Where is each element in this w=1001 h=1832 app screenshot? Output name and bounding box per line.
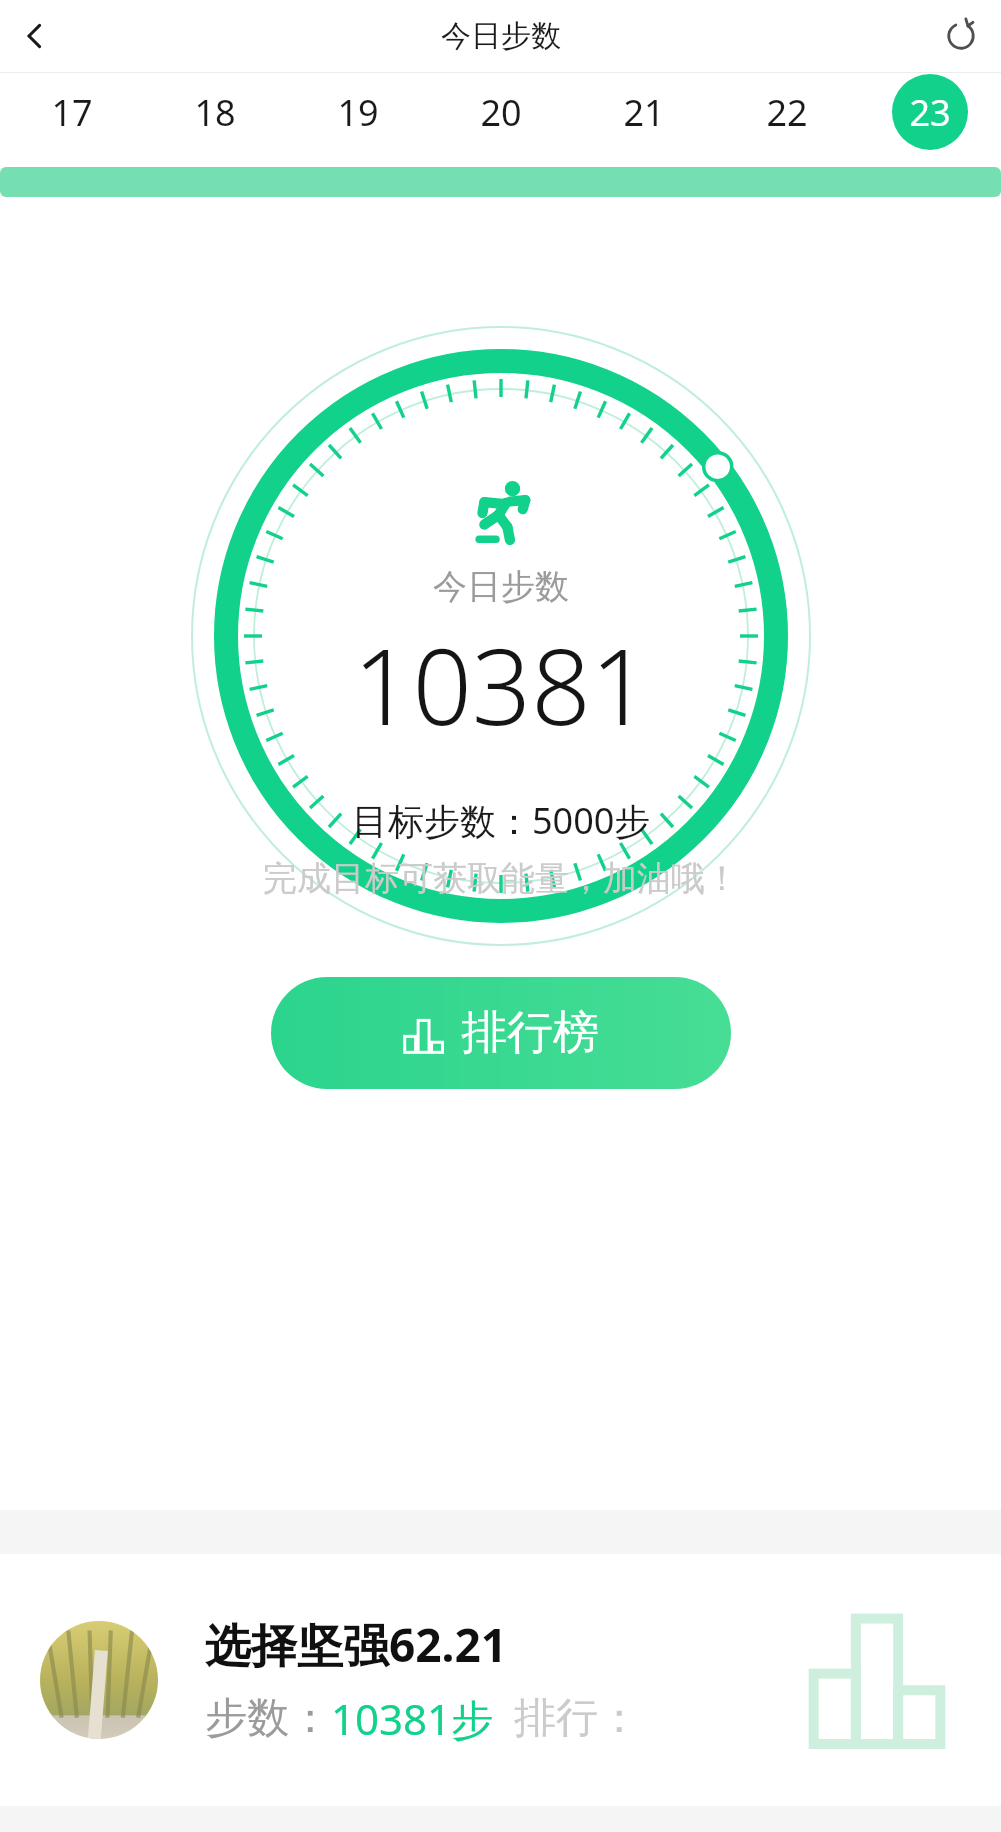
button[interactable]: Refresh	[933, 8, 989, 64]
button[interactable]: 23	[858, 73, 1001, 151]
staticText: 22	[766, 88, 808, 137]
staticText: 目标步数：5000步	[352, 796, 651, 845]
staticText: 18	[194, 88, 236, 137]
button[interactable]: Back	[6, 8, 62, 64]
staticText: 完成目标可获取能量，加油哦！	[263, 857, 739, 900]
button[interactable]: 17	[0, 73, 143, 151]
staticText: 21	[623, 88, 665, 137]
staticText: 23	[909, 88, 951, 137]
staticText: 排行榜	[461, 1004, 599, 1062]
button[interactable]: 18	[143, 73, 286, 151]
button[interactable]: 22	[715, 73, 858, 151]
button[interactable]: 21	[572, 73, 715, 151]
staticText: 选择坚强62.21	[205, 1613, 508, 1676]
button[interactable]: 排行榜	[271, 977, 731, 1089]
button[interactable]: 19	[286, 73, 429, 151]
staticText: 19	[337, 88, 379, 137]
staticText: 10381步	[331, 1690, 494, 1747]
button[interactable]: 20	[429, 73, 572, 151]
button[interactable]: 选择坚强62.21	[0, 1554, 1001, 1806]
staticText: 排行：	[514, 1692, 640, 1745]
staticText: 17	[51, 88, 93, 137]
staticText: 10381	[353, 614, 650, 756]
staticText: 今日步数	[433, 565, 569, 608]
staticText: 步数：	[205, 1692, 331, 1745]
staticText: 今日步数	[441, 17, 561, 55]
staticText: 20	[480, 88, 522, 137]
